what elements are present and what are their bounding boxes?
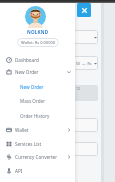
- staticText: 50 — Rs: [76, 61, 92, 66]
- staticText: Currency Converter: [15, 154, 58, 160]
- button[interactable]: Order History: [0, 109, 75, 122]
- button[interactable]: API: [0, 164, 75, 177]
- staticText: Mass Order: [20, 98, 46, 104]
- button[interactable]: New Order: [0, 80, 75, 93]
- button[interactable]: Mass Order: [0, 94, 75, 107]
- staticText: Order History: [20, 113, 50, 119]
- button[interactable]: Currency Converter: [0, 150, 75, 163]
- staticText: Services List: [15, 141, 42, 147]
- staticText: New Order: [20, 84, 44, 90]
- button[interactable]: Close navigation drawer: [77, 3, 91, 17]
- button[interactable]: New Order: [0, 65, 75, 78]
- button[interactable]: Dashboard: [0, 53, 75, 66]
- button[interactable]: Wallet: [0, 123, 75, 136]
- button[interactable]: Wallet: Rs 0.00000: [17, 38, 59, 47]
- button[interactable]: [75, 0, 115, 182]
- staticText: NOLKND: [27, 29, 49, 35]
- staticText: 12: [76, 86, 81, 91]
- staticText: New Order: [15, 69, 39, 75]
- button[interactable]: Services List: [0, 137, 75, 150]
- staticText: API: [15, 168, 23, 174]
- staticText: Dashboard: [15, 57, 39, 63]
- staticText: Wallet: Rs 0.00000: [21, 40, 56, 45]
- staticText: Wallet: [15, 127, 29, 133]
